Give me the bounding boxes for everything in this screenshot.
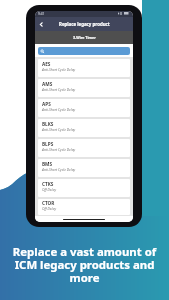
staticText: 3-Wire Timer	[73, 35, 96, 40]
staticText: CTKS	[42, 181, 54, 187]
button[interactable]: CTKS	[38, 179, 130, 197]
staticText: Anti-Short Cycle Delay	[42, 127, 76, 132]
staticText: BLKS	[42, 121, 54, 127]
button[interactable]: Back	[35, 18, 47, 30]
staticText: 9:41	[38, 12, 45, 16]
button[interactable]: Search	[38, 47, 130, 55]
staticText: BLPS	[42, 141, 54, 147]
staticText: AMS	[42, 81, 53, 87]
staticText: Replace a vast amount of ICM legacy prod…	[7, 244, 162, 285]
button[interactable]: APS	[38, 99, 130, 117]
staticText: Anti-Short Cycle Delay	[42, 67, 76, 72]
staticText: Anti-Short Cycle Delay	[42, 107, 76, 112]
staticText: AES	[42, 61, 51, 67]
staticText: BMS	[42, 161, 53, 167]
staticText: Off Delay	[42, 206, 57, 211]
staticText: Anti-Short Cycle Delay	[42, 167, 76, 172]
button[interactable]: AES	[38, 59, 130, 77]
staticText: Anti-Short Cycle Delay	[42, 87, 76, 92]
staticText: APS	[42, 101, 51, 107]
staticText: Anti-Short Cycle Delay	[42, 147, 76, 152]
button[interactable]: BLPS	[38, 139, 130, 157]
staticText: CTOR	[42, 200, 55, 206]
button[interactable]: BMS	[38, 159, 130, 177]
staticText: Off Delay	[42, 187, 57, 192]
staticText: Replace legacy product	[59, 21, 110, 27]
button[interactable]: BLKS	[38, 119, 130, 137]
button[interactable]: CTOR	[38, 199, 130, 215]
button[interactable]: AMS	[38, 79, 130, 97]
